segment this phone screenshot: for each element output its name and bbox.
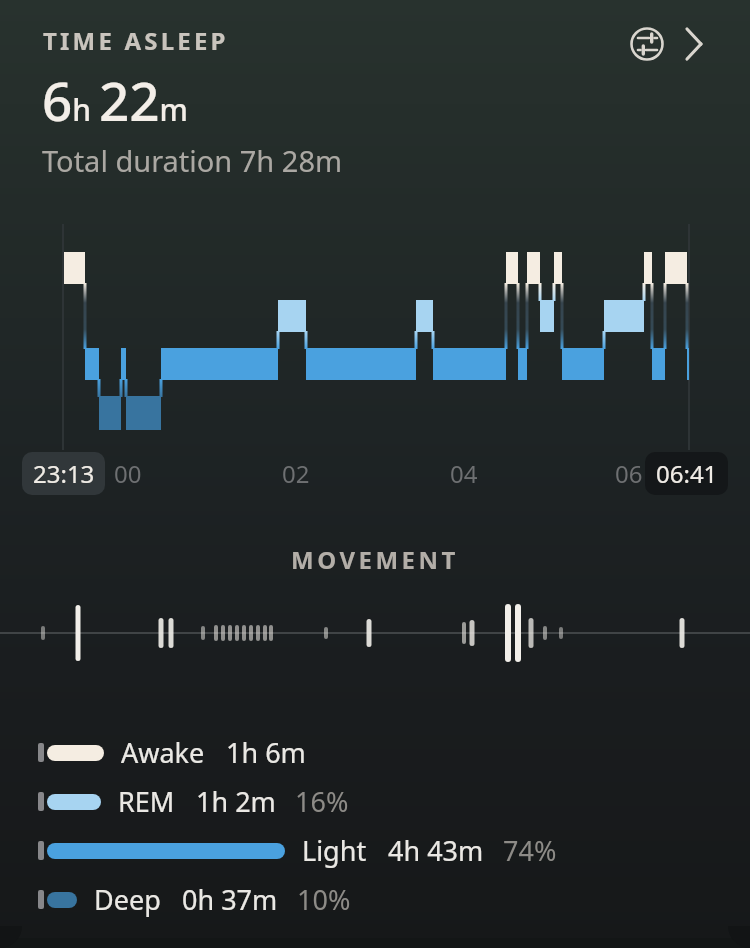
button[interactable]: Awake [38, 728, 750, 777]
button[interactable]: 06:41 [645, 452, 728, 495]
staticText: Awake [121, 734, 205, 771]
button[interactable]: REM [38, 777, 750, 826]
staticText: 02 [282, 457, 310, 490]
staticText: 16% [295, 783, 349, 820]
staticText: Deep [94, 881, 161, 918]
staticText: 06 [615, 457, 643, 490]
button[interactable] [616, 12, 736, 76]
staticText: 06:41 [656, 457, 718, 490]
staticText: 1h 2m [196, 783, 276, 820]
staticText: REM [118, 783, 175, 820]
staticText: 0h 37m [182, 881, 278, 918]
staticText: 00 [114, 457, 142, 490]
staticText: Total duration 7h 28m [42, 141, 343, 180]
staticText: 4h 43m [388, 832, 484, 869]
staticText: TIME ASLEEP [43, 24, 229, 57]
staticText: 23:13 [33, 457, 95, 490]
staticText: 74% [503, 832, 557, 869]
button[interactable]: 23:13 [22, 452, 105, 495]
staticText: MOVEMENT [0, 543, 750, 576]
staticText: 04 [450, 457, 478, 490]
staticText: 1h 6m [226, 734, 306, 771]
staticText: 6h 22m [42, 64, 188, 136]
staticText: Light [302, 832, 367, 869]
button[interactable]: Light [38, 826, 750, 875]
staticText: 10% [297, 881, 351, 918]
button[interactable]: Deep [38, 875, 750, 924]
